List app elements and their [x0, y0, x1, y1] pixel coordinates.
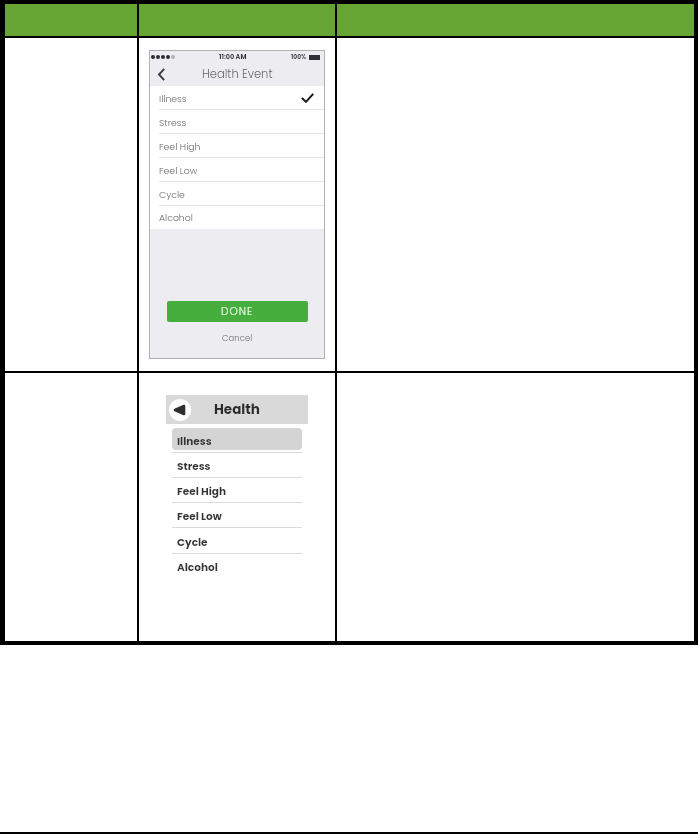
staticText: Alcohol: [177, 560, 218, 575]
staticText: Illness: [177, 434, 212, 449]
staticText: Stress: [177, 459, 211, 474]
staticText: Cycle: [177, 535, 208, 550]
staticText: Feel Low: [177, 509, 222, 524]
button[interactable]: Illness: [150, 86, 324, 110]
button[interactable]: Cycle: [150, 182, 324, 206]
button[interactable]: Cancel: [150, 330, 324, 346]
button[interactable]: Stress: [172, 453, 302, 478]
staticText: 100%: [291, 53, 307, 61]
button[interactable]: Cycle: [172, 529, 302, 554]
button[interactable]: Stress: [150, 110, 324, 134]
button[interactable]: DONE: [167, 301, 308, 322]
staticText: 11:00 AM: [219, 52, 247, 61]
button[interactable]: Illness: [172, 428, 302, 453]
staticText: Stress: [159, 116, 187, 129]
button[interactable]: Feel High: [150, 134, 324, 158]
staticText: Feel Low: [159, 164, 198, 177]
button[interactable]: Feel Low: [150, 158, 324, 182]
button[interactable]: Feel Low: [172, 503, 302, 528]
staticText: Health: [214, 400, 260, 419]
staticText: Alcohol: [159, 211, 193, 224]
staticText: Feel High: [177, 484, 226, 499]
button[interactable]: Alcohol: [150, 206, 324, 229]
staticText: Illness: [159, 92, 187, 105]
staticText: Feel High: [159, 140, 201, 153]
staticText: Health Event: [202, 66, 273, 82]
button[interactable]: Back: [169, 399, 191, 421]
button[interactable]: Feel High: [172, 478, 302, 503]
button[interactable]: Alcohol: [172, 554, 302, 579]
staticText: Cycle: [159, 188, 185, 201]
staticText: Cancel: [222, 332, 253, 344]
staticText: DONE: [221, 304, 254, 319]
button[interactable]: Back: [153, 66, 169, 82]
